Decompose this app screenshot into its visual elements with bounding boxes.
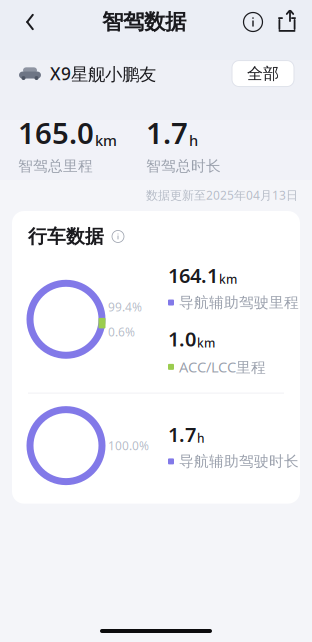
staticText: km bbox=[95, 131, 117, 150]
staticText: X9星舰小鹏友 bbox=[50, 62, 156, 85]
staticText: 1.7 bbox=[146, 113, 188, 152]
button[interactable]: Back bbox=[8, 0, 52, 44]
button[interactable]: 全部 bbox=[232, 61, 294, 87]
staticText: ACC/LCC里程 bbox=[179, 357, 266, 377]
staticText: 导航辅助驾驶时长 bbox=[179, 452, 299, 470]
staticText: 1.0 bbox=[168, 325, 196, 352]
staticText: 0.6% bbox=[108, 324, 135, 340]
staticText: 智驾数据 bbox=[102, 9, 186, 35]
staticText: 智驾总时长 bbox=[146, 157, 221, 175]
button[interactable]: X9星舰小鹏友 bbox=[18, 56, 156, 91]
button[interactable]: Information bbox=[236, 0, 270, 44]
staticText: 100.0% bbox=[108, 438, 149, 454]
staticText: h bbox=[197, 430, 205, 446]
staticText: km bbox=[197, 335, 215, 351]
staticText: 导航辅助驾驶里程 bbox=[179, 293, 299, 311]
staticText: 行车数据 bbox=[28, 225, 104, 248]
staticText: h bbox=[189, 131, 198, 150]
staticText: 164.1 bbox=[168, 262, 218, 288]
staticText: 99.4% bbox=[108, 299, 142, 315]
staticText: km bbox=[219, 271, 237, 287]
staticText: 全部 bbox=[247, 64, 279, 83]
button[interactable]: Share bbox=[270, 0, 304, 44]
staticText: 165.0 bbox=[18, 113, 94, 152]
staticText: 数据更新至2025年04月13日 bbox=[146, 187, 298, 203]
button[interactable]: About driving data bbox=[109, 227, 127, 245]
staticText: 智驾总里程 bbox=[18, 157, 93, 175]
staticText: 1.7 bbox=[168, 421, 196, 447]
